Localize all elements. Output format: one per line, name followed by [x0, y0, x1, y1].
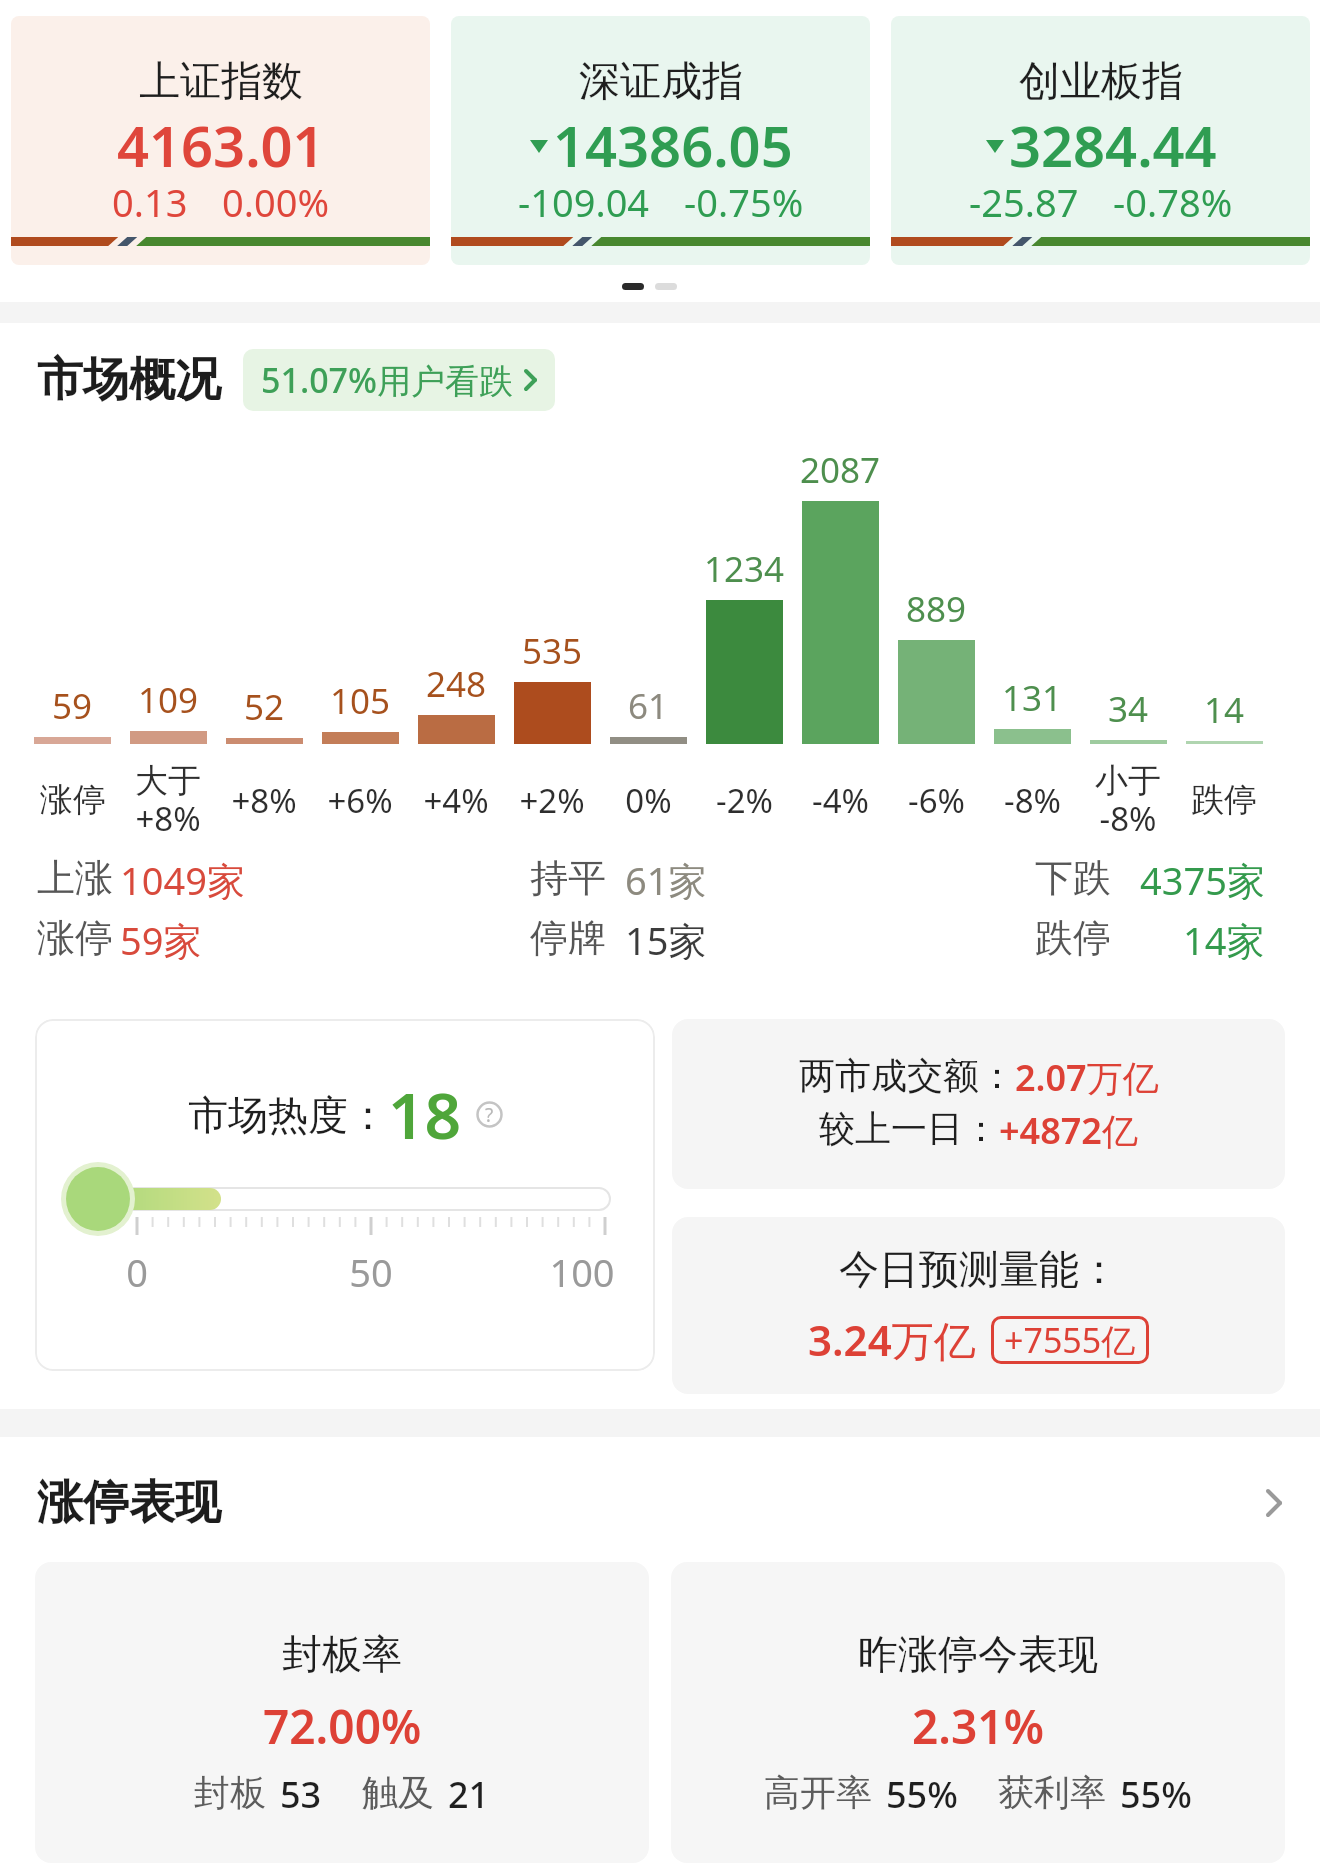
staticText: 3284.44	[1009, 107, 1217, 183]
staticText: 34	[1108, 685, 1149, 733]
staticText: 获利率	[998, 1770, 1106, 1815]
staticText: 14家	[1183, 914, 1265, 960]
staticText: 大于 +8%	[135, 760, 201, 840]
staticText: 55%	[886, 1770, 958, 1819]
staticText: 18	[388, 1071, 462, 1158]
staticText: 51.07%用户看跌	[261, 357, 514, 403]
staticText: ?	[485, 1102, 494, 1128]
staticText: 持平	[530, 854, 606, 900]
staticText: 下跌	[1035, 854, 1111, 900]
staticText: 14	[1204, 686, 1245, 734]
staticText: -0.78%	[1113, 176, 1233, 228]
staticText: 0	[117, 1246, 157, 1298]
button[interactable]: 昨涨停今表现	[671, 1562, 1285, 1863]
staticText: 52	[244, 683, 285, 731]
staticText: 深证成指	[579, 56, 743, 108]
staticText: 50	[341, 1246, 401, 1298]
staticText: 高开率	[764, 1770, 872, 1815]
staticText: 61家	[625, 854, 707, 900]
staticText: 105	[330, 677, 391, 725]
staticText: 小于 -8%	[1095, 760, 1161, 840]
staticText: 1049家	[120, 854, 245, 900]
staticText: 昨涨停今表现	[858, 1629, 1098, 1679]
staticText: 14386.05	[553, 107, 793, 183]
staticText: 0%	[625, 778, 672, 823]
staticText: 109	[138, 676, 199, 724]
staticText: 涨停表现	[37, 1474, 221, 1532]
staticText: 触及	[362, 1770, 434, 1815]
staticText: 55%	[1120, 1770, 1192, 1819]
staticText: 3.24万亿	[808, 1311, 976, 1368]
button[interactable]: 市场热度：	[35, 1019, 655, 1371]
staticText: 封板	[194, 1770, 266, 1815]
staticText: 535	[522, 627, 583, 675]
staticText: 0.00%	[222, 176, 329, 228]
staticText: 跌停	[1035, 914, 1111, 960]
staticText: 1234	[704, 545, 785, 593]
staticText: 131	[1002, 674, 1063, 722]
staticText: -2%	[716, 778, 773, 823]
staticText: 15家	[625, 914, 707, 960]
staticText: 4375家	[1140, 854, 1265, 900]
staticText: 59	[52, 682, 93, 730]
staticText: +2%	[519, 778, 585, 823]
staticText: -0.75%	[684, 176, 804, 228]
staticText: 61	[628, 682, 669, 730]
staticText: 上证指数	[139, 56, 303, 108]
staticText: 停牌	[530, 914, 606, 960]
staticText: 59家	[120, 914, 202, 960]
button[interactable]: 深证成指	[451, 16, 870, 265]
staticText: 跌停	[1191, 779, 1257, 821]
staticText: +4%	[423, 778, 489, 823]
button[interactable]: 上证指数	[11, 16, 430, 265]
staticText: 市场概况	[37, 351, 221, 409]
staticText: 2.31%	[912, 1695, 1044, 1758]
staticText: +8%	[231, 778, 297, 823]
staticText: 4163.01	[117, 107, 325, 183]
staticText: 248	[426, 660, 487, 708]
staticText: 72.00%	[263, 1695, 422, 1758]
staticText: 100	[537, 1246, 627, 1298]
staticText: -25.87	[969, 176, 1079, 228]
staticText: 0.13	[112, 176, 188, 228]
staticText: -6%	[908, 778, 965, 823]
staticText: -4%	[812, 778, 869, 823]
staticText: 市场热度：	[188, 1090, 388, 1140]
button[interactable]: 涨停表现	[37, 1474, 1283, 1532]
staticText: 上涨	[37, 854, 113, 900]
staticText: 涨停	[40, 779, 106, 821]
staticText: -8%	[1004, 778, 1061, 823]
staticText: +4872亿	[999, 1106, 1138, 1155]
staticText: +6%	[327, 778, 393, 823]
button[interactable]: 两市成交额：	[672, 1019, 1285, 1189]
staticText: 今日预测量能：	[839, 1244, 1119, 1294]
staticText: +7555亿	[1004, 1317, 1136, 1363]
staticText: 涨停	[37, 914, 113, 960]
staticText: 创业板指	[1019, 56, 1183, 108]
staticText: 2087	[800, 446, 881, 494]
staticText: 封板率	[282, 1629, 402, 1679]
staticText: 21	[448, 1770, 490, 1819]
button[interactable]: 今日预测量能：	[672, 1217, 1285, 1394]
staticText: 2.07万亿	[1015, 1053, 1159, 1102]
button[interactable]: 封板率	[35, 1562, 649, 1863]
staticText: -109.04	[518, 176, 650, 228]
button[interactable]: 创业板指	[891, 16, 1310, 265]
button[interactable]: 51.07%用户看跌	[243, 349, 555, 411]
staticText: 53	[280, 1770, 322, 1819]
staticText: 889	[906, 585, 967, 633]
staticText: 较上一日：	[819, 1106, 999, 1151]
staticText: 两市成交额：	[799, 1053, 1015, 1098]
